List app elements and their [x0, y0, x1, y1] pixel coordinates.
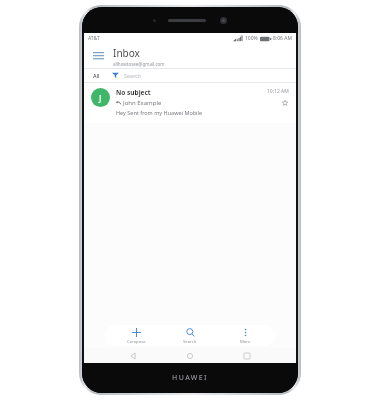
button[interactable]: All: [90, 71, 103, 80]
staticText: Inbox: [113, 46, 140, 60]
staticText: J: [99, 92, 102, 104]
button[interactable]: Search: [166, 326, 214, 346]
button[interactable]: Home: [182, 348, 198, 363]
button[interactable]: Recent apps: [239, 348, 255, 363]
staticText: More: [240, 339, 251, 345]
button[interactable]: Open navigation drawer: [89, 47, 107, 65]
button[interactable]: More: [221, 326, 269, 346]
button[interactable]: Star message: [280, 98, 289, 107]
staticText: 10:12 AM: [267, 88, 289, 95]
staticText: John Example: [123, 99, 162, 107]
button[interactable]: Filter: [110, 70, 120, 80]
staticText: allhowtosee@gmail.com: [113, 61, 165, 67]
staticText: 8:06 AM: [273, 35, 292, 42]
staticText: Search: [183, 339, 197, 345]
button[interactable]: J: [84, 83, 296, 123]
button[interactable]: Back: [125, 348, 141, 363]
staticText: AT&T: [88, 35, 100, 42]
button[interactable]: Compose: [112, 326, 160, 346]
staticText: Hey Sent from my Huawei Mobile: [116, 109, 203, 116]
staticText: HUAWEI: [172, 373, 209, 383]
staticText: 100%: [245, 35, 258, 42]
staticText: Search: [124, 72, 142, 79]
staticText: Compose: [127, 339, 146, 345]
staticText: No subject: [116, 88, 151, 97]
staticText: All: [93, 72, 100, 79]
